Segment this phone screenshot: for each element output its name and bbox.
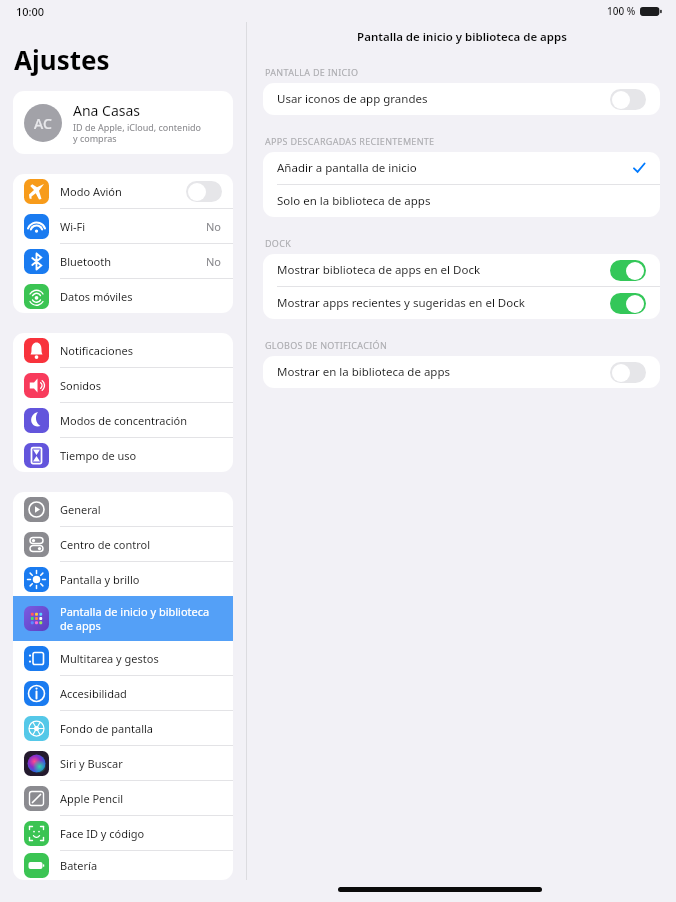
button[interactable]: Activado bbox=[610, 260, 646, 281]
button[interactable]: Face ID y código bbox=[13, 816, 233, 850]
button[interactable]: Tiempo de uso bbox=[13, 438, 233, 472]
staticText: Usar iconos de app grandes bbox=[277, 91, 610, 107]
staticText: Face ID y código bbox=[60, 826, 222, 841]
button[interactable]: Apple Pencil bbox=[13, 781, 233, 815]
button[interactable]: Mostrar biblioteca de apps en el Dock bbox=[263, 254, 660, 286]
button[interactable]: Activado bbox=[610, 293, 646, 314]
staticText: General bbox=[60, 502, 222, 517]
staticText: DOCK bbox=[265, 237, 292, 249]
staticText: ID de Apple, iCloud, contenido y compras bbox=[73, 121, 202, 144]
button[interactable]: Usar iconos de app grandes bbox=[263, 83, 660, 115]
button[interactable]: Multitarea y gestos bbox=[13, 641, 233, 675]
button[interactable]: Modos de concentración bbox=[13, 403, 233, 437]
staticText: No bbox=[206, 254, 222, 269]
button[interactable]: Sonidos bbox=[13, 368, 233, 402]
button[interactable]: Solo en la biblioteca de apps bbox=[263, 185, 660, 217]
button[interactable]: AC bbox=[13, 91, 233, 154]
staticText: 10:00 bbox=[16, 4, 45, 19]
staticText: No bbox=[206, 219, 222, 234]
button[interactable]: General bbox=[13, 492, 233, 526]
staticText: Modos de concentración bbox=[60, 413, 222, 428]
staticText: Mostrar biblioteca de apps en el Dock bbox=[277, 262, 610, 278]
button[interactable]: Siri y Buscar bbox=[13, 746, 233, 780]
button[interactable]: Pantalla de inicio y biblioteca de apps bbox=[13, 596, 233, 641]
button[interactable]: Desactivado bbox=[610, 362, 646, 383]
button[interactable]: Añadir a pantalla de inicio bbox=[263, 152, 660, 184]
staticText: Wi-Fi bbox=[60, 219, 206, 234]
staticText: Batería bbox=[60, 858, 222, 873]
button[interactable]: Mostrar apps recientes y sugeridas en el… bbox=[263, 287, 660, 319]
staticText: Centro de control bbox=[60, 537, 222, 552]
button[interactable]: Batería bbox=[13, 851, 233, 880]
staticText: Añadir a pantalla de inicio bbox=[277, 160, 632, 176]
button[interactable]: Accesibilidad bbox=[13, 676, 233, 710]
staticText: Modo Avión bbox=[60, 184, 186, 199]
button[interactable]: Bluetooth bbox=[13, 244, 233, 278]
staticText: PANTALLA DE INICIO bbox=[265, 66, 359, 78]
staticText: Fondo de pantalla bbox=[60, 721, 222, 736]
staticText: Siri y Buscar bbox=[60, 756, 222, 771]
staticText: Solo en la biblioteca de apps bbox=[277, 193, 646, 209]
button[interactable]: Wi-Fi bbox=[13, 209, 233, 243]
button[interactable]: Centro de control bbox=[13, 527, 233, 561]
button[interactable]: Datos móviles bbox=[13, 279, 233, 313]
staticText: Ajustes bbox=[14, 42, 110, 77]
button[interactable]: Pantalla y brillo bbox=[13, 562, 233, 596]
button[interactable]: Fondo de pantalla bbox=[13, 711, 233, 745]
staticText: 100 % bbox=[607, 4, 636, 18]
staticText: Datos móviles bbox=[60, 289, 222, 304]
staticText: Apple Pencil bbox=[60, 791, 222, 806]
button[interactable]: Mostrar en la biblioteca de apps bbox=[263, 356, 660, 388]
button[interactable]: Notificaciones bbox=[13, 333, 233, 367]
staticText: Ana Casas bbox=[73, 101, 141, 120]
staticText: Multitarea y gestos bbox=[60, 651, 222, 666]
staticText: Pantalla y brillo bbox=[60, 572, 222, 587]
staticText: AC bbox=[34, 114, 52, 133]
staticText: Mostrar en la biblioteca de apps bbox=[277, 364, 610, 380]
staticText: Tiempo de uso bbox=[60, 448, 222, 463]
button[interactable]: Modo Avión bbox=[13, 174, 233, 208]
button[interactable]: Desactivado bbox=[610, 89, 646, 110]
staticText: Mostrar apps recientes y sugeridas en el… bbox=[277, 295, 610, 311]
staticText: APPS DESCARGADAS RECIENTEMENTE bbox=[265, 135, 435, 147]
staticText: Pantalla de inicio y biblioteca de apps bbox=[357, 29, 567, 45]
staticText: Sonidos bbox=[60, 378, 222, 393]
staticText: Notificaciones bbox=[60, 343, 222, 358]
staticText: Bluetooth bbox=[60, 254, 206, 269]
button[interactable]: Desactivado bbox=[186, 181, 222, 202]
staticText: GLOBOS DE NOTIFICACIÓN bbox=[265, 339, 388, 351]
staticText: Accesibilidad bbox=[60, 686, 222, 701]
staticText: Pantalla de inicio y biblioteca de apps bbox=[60, 604, 222, 633]
